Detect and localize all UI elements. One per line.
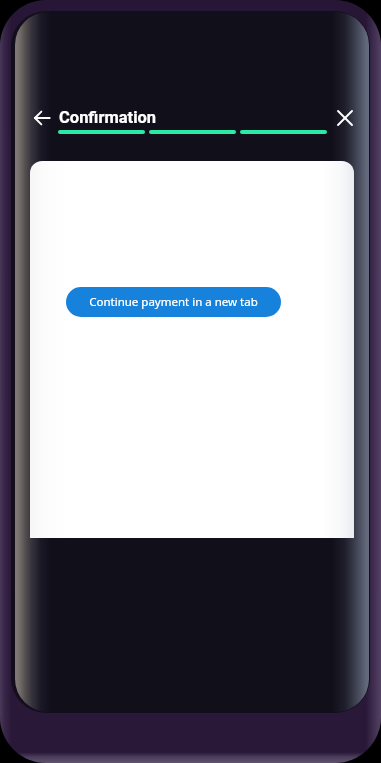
button[interactable]: Close [332,106,358,129]
staticText: Confirmation [59,108,157,127]
button[interactable]: Continue payment in a new tab [66,287,281,317]
button[interactable]: Back [30,106,54,129]
staticText: Continue payment in a new tab [89,294,258,310]
